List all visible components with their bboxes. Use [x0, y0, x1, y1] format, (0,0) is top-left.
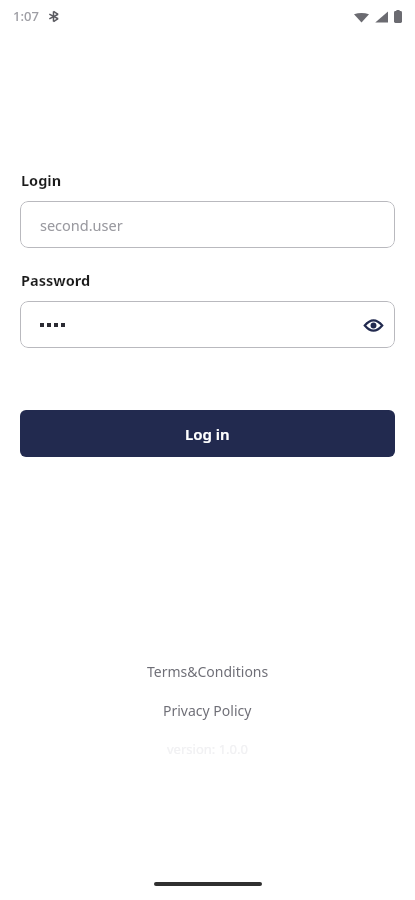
button[interactable]: Log in	[20, 410, 395, 457]
staticText: 1:07	[13, 7, 39, 25]
staticText: Log in	[185, 424, 230, 444]
staticText: version: 1.0.0	[167, 740, 248, 758]
staticText: Terms&Conditions	[147, 662, 269, 681]
staticText: Privacy Policy	[163, 701, 252, 720]
button[interactable]: Show password	[20, 301, 395, 348]
button[interactable]: Show password	[351, 303, 395, 347]
button[interactable]: Privacy Policy	[147, 697, 268, 724]
staticText: second.user	[40, 215, 123, 235]
button[interactable]: Terms&Conditions	[131, 658, 285, 685]
button[interactable]: second.user	[20, 201, 395, 248]
staticText: Password	[21, 270, 91, 290]
staticText: Login	[21, 170, 62, 190]
